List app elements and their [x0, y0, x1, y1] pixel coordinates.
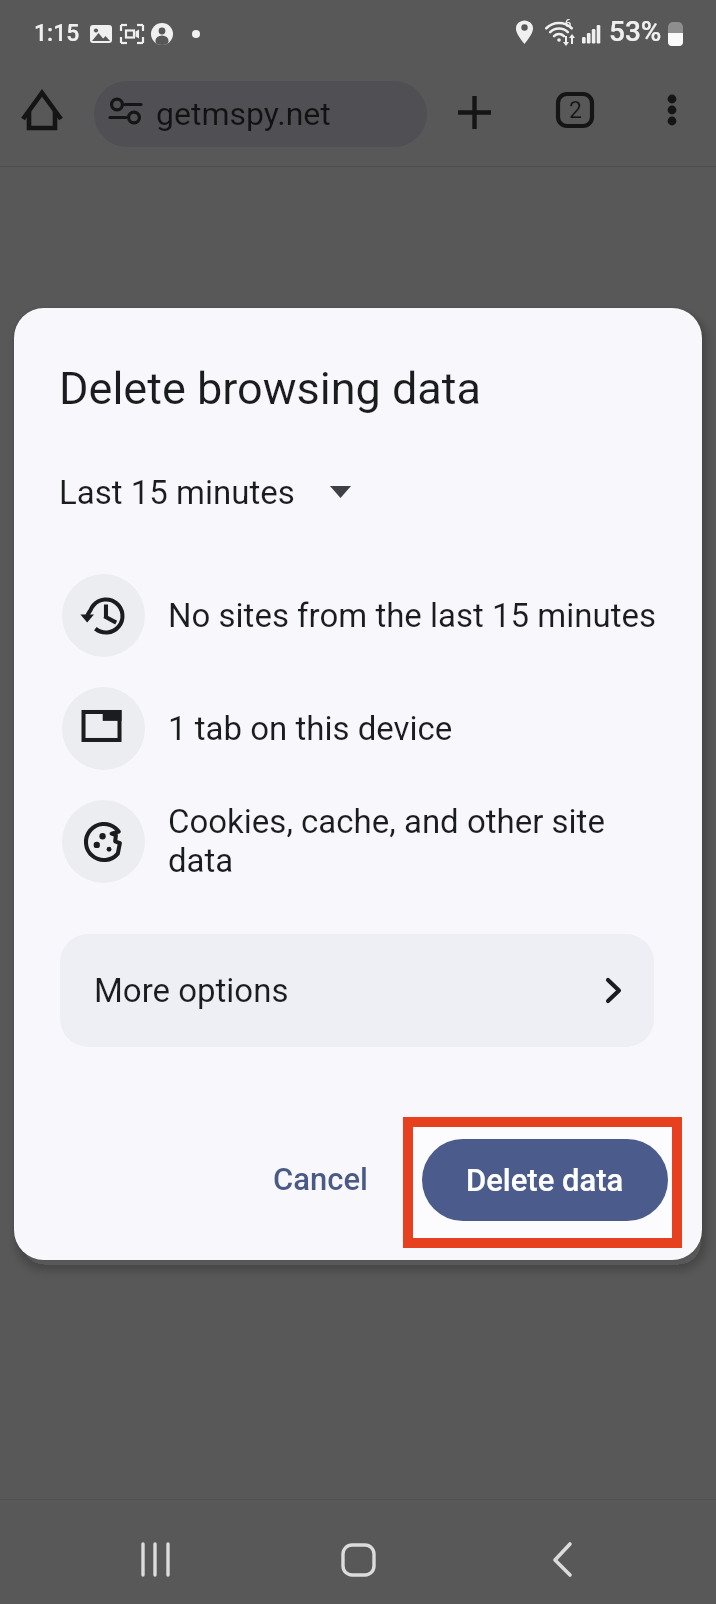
staticText: No sites from the last 15 minutes [168, 596, 657, 635]
button[interactable]: Cancel [246, 1137, 394, 1221]
button[interactable]: Cookies, cache, and other site data [45, 791, 665, 891]
button[interactable]: Home [14, 82, 70, 138]
staticText: Cookies, cache, and other site data [168, 802, 605, 880]
staticText: Delete data [466, 1162, 624, 1198]
button[interactable]: Back [522, 1520, 602, 1600]
button[interactable]: Home [318, 1520, 398, 1600]
button[interactable]: Last 15 minutes [44, 457, 404, 527]
button[interactable]: No sites from the last 15 minutes [45, 565, 665, 665]
staticText: 6 [565, 17, 572, 30]
staticText: 1:15 [34, 20, 80, 47]
button[interactable]: 1 tab on this device [45, 678, 665, 778]
staticText: Delete browsing data [59, 362, 482, 415]
button[interactable]: Switch tabs [548, 84, 602, 138]
button[interactable]: Recent apps [115, 1520, 195, 1600]
button[interactable]: More options [60, 934, 654, 1047]
button[interactable]: Delete data [422, 1139, 668, 1221]
button[interactable]: Customize and control Chrome [646, 84, 698, 136]
staticText: 1 tab on this device [168, 709, 453, 748]
staticText: Cancel [273, 1161, 368, 1197]
staticText: getmspy.net [156, 95, 331, 133]
staticText: 53% [609, 15, 662, 48]
staticText: Last 15 minutes [59, 473, 295, 512]
button[interactable]: getmspy.net [94, 81, 427, 147]
button[interactable]: New tab [448, 86, 501, 139]
staticText: More options [94, 971, 289, 1010]
staticText: 2 [569, 97, 582, 124]
